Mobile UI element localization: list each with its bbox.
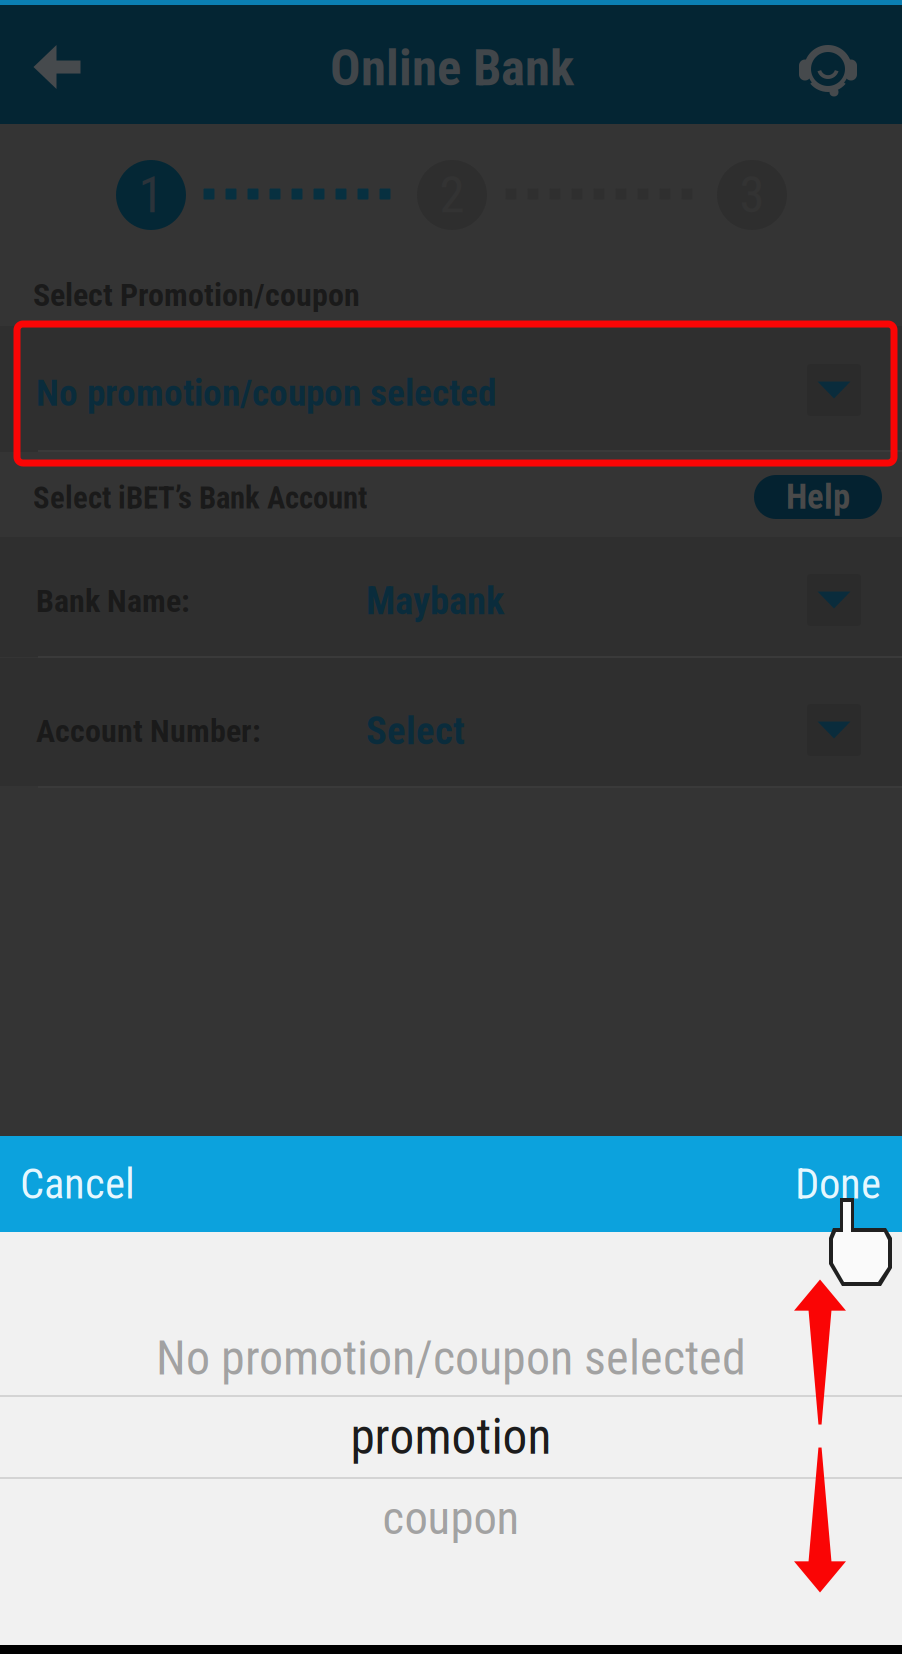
- staticText: coupon: [382, 1491, 519, 1545]
- button[interactable]: coupon: [0, 1477, 902, 1559]
- button[interactable]: Back: [1, 7, 113, 126]
- button[interactable]: No promotion/coupon selected: [0, 1317, 902, 1399]
- staticText: Maybank: [366, 578, 504, 624]
- button[interactable]: promotion: [0, 1396, 902, 1477]
- button[interactable]: Help: [754, 475, 882, 519]
- staticText: Select: [366, 708, 465, 754]
- button[interactable]: Select promotion or coupon: [16, 323, 894, 463]
- staticText: Cancel: [20, 1159, 135, 1209]
- staticText: Done: [795, 1159, 881, 1209]
- staticText: Bank Name:: [36, 582, 190, 620]
- button[interactable]: Cancel: [20, 1136, 200, 1232]
- staticText: Help: [786, 477, 850, 517]
- staticText: No promotion/coupon selected: [156, 1330, 746, 1386]
- staticText: No promotion/coupon selected: [36, 371, 497, 415]
- button[interactable]: Customer support: [775, 7, 881, 126]
- staticText: Online Bank: [330, 38, 574, 98]
- staticText: Account Number:: [36, 712, 261, 750]
- staticText: Select iBET’s Bank Account: [33, 480, 367, 516]
- button[interactable]: Done: [721, 1136, 881, 1232]
- staticText: Select Promotion/coupon: [33, 276, 360, 314]
- staticText: promotion: [350, 1408, 551, 1466]
- staticText: 1: [138, 165, 163, 225]
